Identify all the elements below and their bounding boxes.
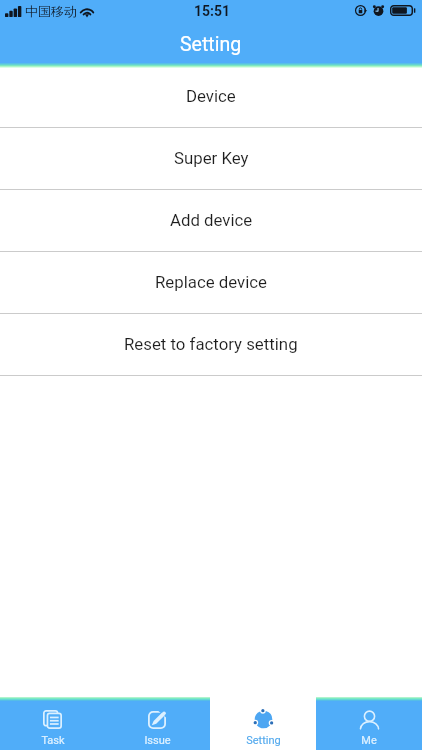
button[interactable]: Issue: [105, 698, 210, 750]
staticText: Replace device: [155, 272, 267, 292]
staticText: Issue: [144, 734, 171, 747]
staticText: Device: [186, 86, 236, 106]
staticText: Reset to factory setting: [124, 334, 298, 354]
button[interactable]: Device: [0, 66, 422, 128]
staticText: 15:51: [194, 3, 231, 19]
staticText: Task: [41, 734, 65, 747]
button[interactable]: Reset to factory setting: [0, 314, 422, 376]
button[interactable]: Task: [0, 698, 105, 750]
staticText: Me: [361, 734, 377, 747]
button[interactable]: Me: [316, 698, 422, 750]
button[interactable]: Add device: [0, 190, 422, 252]
button[interactable]: Super Key: [0, 128, 422, 190]
staticText: Add device: [170, 210, 253, 230]
staticText: 中国移动: [25, 3, 77, 19]
button[interactable]: Setting: [210, 698, 316, 750]
button[interactable]: Replace device: [0, 252, 422, 314]
staticText: Super Key: [174, 148, 249, 168]
staticText: Setting: [180, 33, 242, 56]
staticText: Setting: [246, 734, 281, 747]
